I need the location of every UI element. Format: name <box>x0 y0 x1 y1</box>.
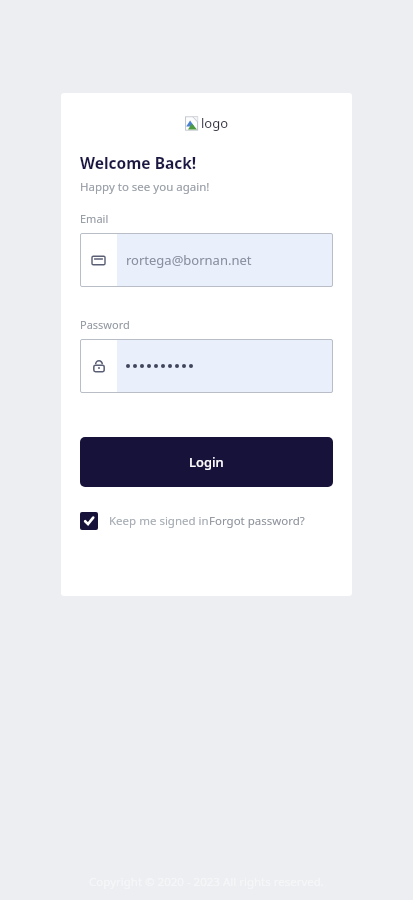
button[interactable]: Keep me signed in <box>109 513 209 529</box>
other: Email <box>92 254 105 267</box>
staticText: Happy to see you again! <box>80 179 210 195</box>
staticText: Password <box>80 317 130 332</box>
staticText: Login <box>189 453 224 471</box>
staticText: rortega@bornan.net <box>126 251 252 269</box>
other: Password <box>92 359 106 373</box>
button[interactable]: Email <box>80 233 333 287</box>
staticText: logo <box>201 114 229 132</box>
button[interactable]: Password <box>80 339 333 393</box>
staticText: Welcome Back! <box>80 152 197 173</box>
button[interactable]: Forgot password? <box>209 513 305 529</box>
staticText: Email <box>80 211 109 226</box>
button[interactable]: Keep me signed in <box>80 512 98 530</box>
button[interactable]: Login <box>80 437 333 487</box>
